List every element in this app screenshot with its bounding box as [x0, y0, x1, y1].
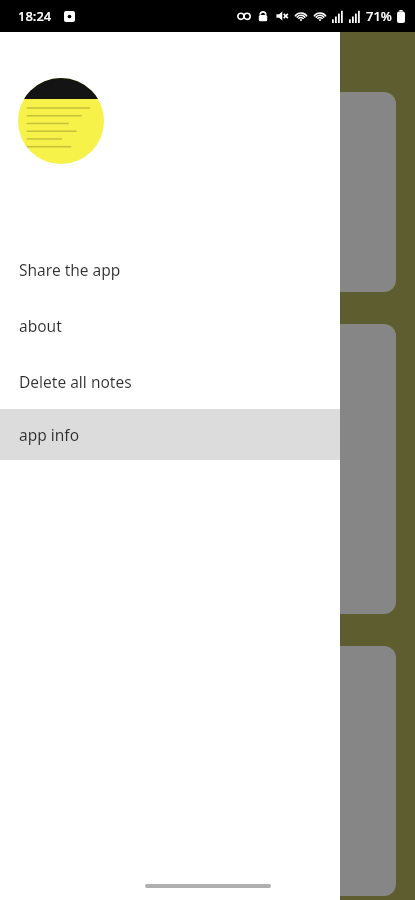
staticText: 71% — [366, 7, 392, 25]
button[interactable]: about — [0, 297, 340, 353]
staticText: 18:24 — [18, 7, 52, 25]
button[interactable]: Share the app — [0, 241, 340, 297]
staticText: about — [19, 315, 62, 336]
button[interactable]: app info — [0, 409, 340, 460]
staticText: Notes — [24, 129, 66, 149]
staticText: app info — [19, 424, 80, 445]
staticText: Notes — [24, 102, 66, 122]
button[interactable]: Notes — [10, 324, 396, 614]
staticText: Notes — [24, 361, 66, 381]
staticText: Delete all notes — [19, 371, 132, 392]
staticText: Notes — [24, 442, 66, 462]
staticText: Notes — [24, 156, 66, 176]
button[interactable]: Notes — [10, 646, 396, 896]
button[interactable]: Notes — [10, 92, 396, 292]
staticText: Notes — [24, 415, 66, 435]
button[interactable]: Delete all notes — [0, 353, 340, 409]
staticText: Share the app — [19, 259, 121, 280]
